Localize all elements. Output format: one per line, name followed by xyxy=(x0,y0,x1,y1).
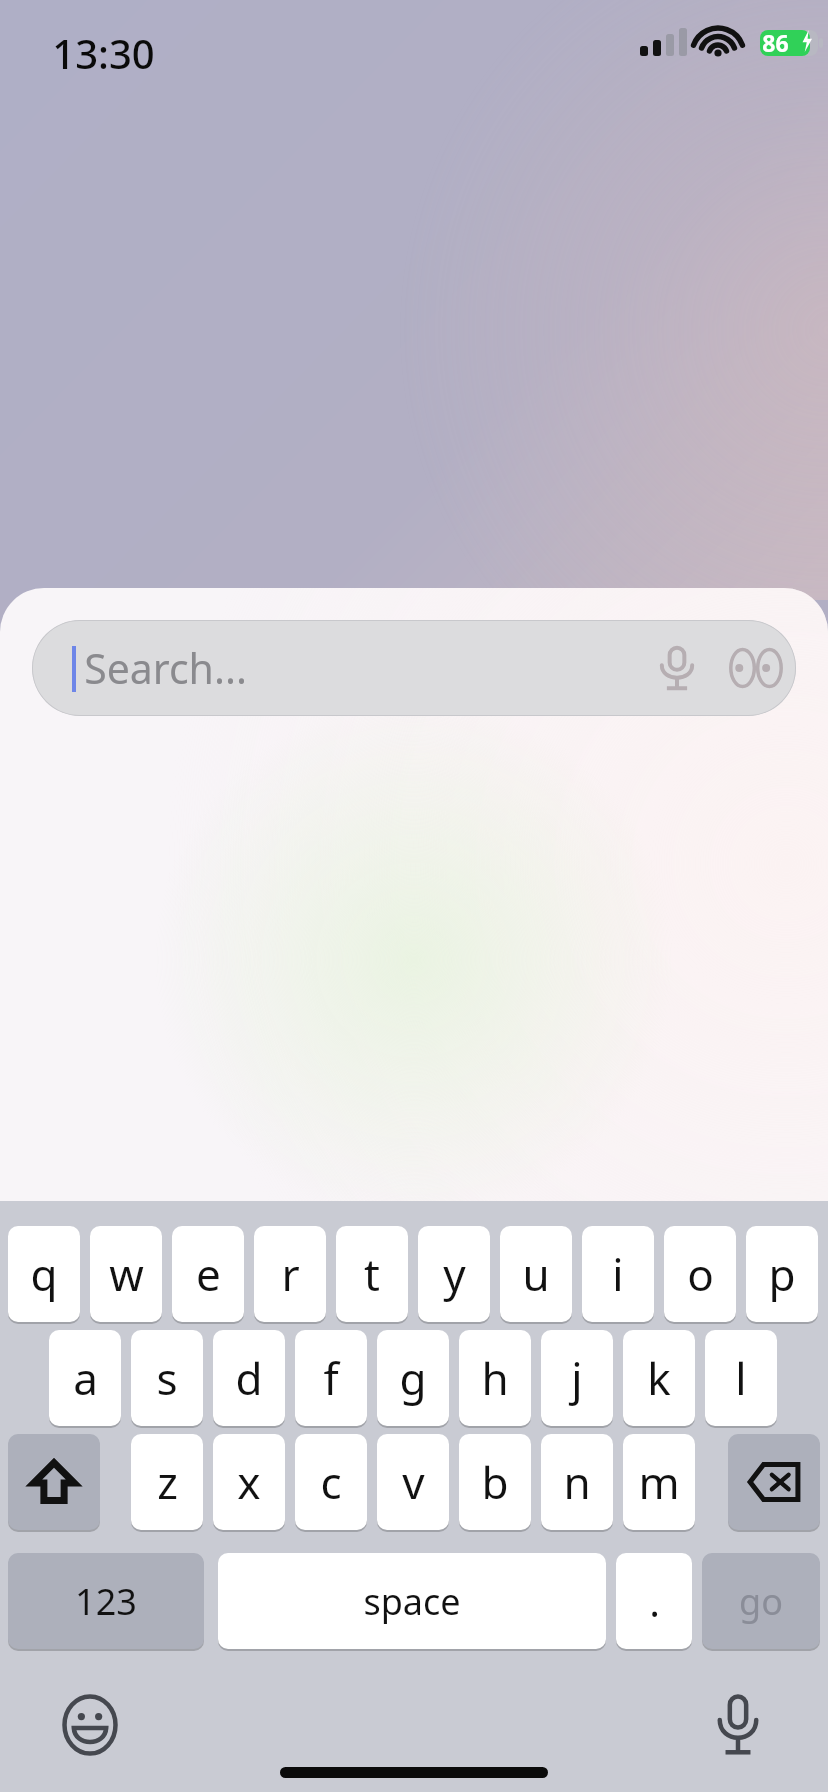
staticText: n xyxy=(563,1452,591,1512)
button[interactable]: k xyxy=(623,1330,695,1426)
staticText: c xyxy=(320,1452,342,1512)
button[interactable]: . xyxy=(616,1553,692,1649)
button[interactable]: Search... xyxy=(32,620,796,716)
button[interactable]: u xyxy=(500,1226,572,1322)
button[interactable]: e xyxy=(172,1226,244,1322)
button[interactable]: n xyxy=(541,1434,613,1530)
staticText: y xyxy=(443,1244,466,1304)
button[interactable]: Visual lookup xyxy=(716,620,796,716)
staticText: x xyxy=(237,1452,261,1512)
staticText: space xyxy=(363,1577,461,1626)
button[interactable]: o xyxy=(664,1226,736,1322)
staticText: v xyxy=(402,1452,425,1512)
button[interactable]: Dictation xyxy=(700,1687,776,1763)
button[interactable]: Voice search xyxy=(638,620,716,716)
button[interactable]: q xyxy=(8,1226,80,1322)
button[interactable]: g xyxy=(377,1330,449,1426)
button[interactable]: c xyxy=(295,1434,367,1530)
button[interactable]: h xyxy=(459,1330,531,1426)
staticText: g xyxy=(399,1348,427,1408)
staticText: w xyxy=(109,1244,144,1304)
staticText: j xyxy=(571,1348,583,1408)
button[interactable]: space xyxy=(218,1553,606,1649)
button[interactable]: p xyxy=(746,1226,818,1322)
staticText: go xyxy=(739,1577,783,1626)
button[interactable]: f xyxy=(295,1330,367,1426)
button[interactable]: 123 xyxy=(8,1553,204,1649)
staticText: r xyxy=(281,1244,300,1304)
staticText: q xyxy=(30,1244,58,1304)
staticText: u xyxy=(522,1244,550,1304)
staticText: 123 xyxy=(75,1577,137,1626)
button[interactable]: b xyxy=(459,1434,531,1530)
button[interactable]: d xyxy=(213,1330,285,1426)
button[interactable]: y xyxy=(418,1226,490,1322)
button[interactable]: z xyxy=(131,1434,203,1530)
staticText: b xyxy=(481,1452,509,1512)
staticText: i xyxy=(612,1244,624,1304)
staticText: f xyxy=(323,1348,339,1408)
staticText: a xyxy=(73,1348,98,1408)
button[interactable]: s xyxy=(131,1330,203,1426)
button[interactable]: t xyxy=(336,1226,408,1322)
button[interactable] xyxy=(728,1434,820,1530)
staticText: k xyxy=(647,1348,671,1408)
button[interactable]: a xyxy=(49,1330,121,1426)
button[interactable]: v xyxy=(377,1434,449,1530)
button[interactable]: r xyxy=(254,1226,326,1322)
button[interactable]: l xyxy=(705,1330,777,1426)
staticText: p xyxy=(768,1244,796,1304)
button[interactable]: w xyxy=(90,1226,162,1322)
button[interactable]: j xyxy=(541,1330,613,1426)
button[interactable]: i xyxy=(582,1226,654,1322)
staticText: Search... xyxy=(84,640,247,696)
button[interactable]: Emoji xyxy=(52,1687,128,1763)
staticText: m xyxy=(638,1452,680,1512)
staticText: . xyxy=(649,1574,660,1628)
button[interactable]: m xyxy=(623,1434,695,1530)
button[interactable] xyxy=(8,1434,100,1530)
staticText: h xyxy=(481,1348,509,1408)
staticText: 13:30 xyxy=(52,26,155,80)
staticText: l xyxy=(735,1348,747,1408)
button[interactable]: go xyxy=(702,1553,820,1649)
button[interactable]: x xyxy=(213,1434,285,1530)
staticText: 86 xyxy=(762,27,789,58)
staticText: o xyxy=(687,1244,714,1304)
staticText: t xyxy=(364,1244,380,1304)
staticText: s xyxy=(156,1348,178,1408)
staticText: z xyxy=(157,1452,178,1512)
staticText: d xyxy=(235,1348,263,1408)
staticText: e xyxy=(196,1244,221,1304)
